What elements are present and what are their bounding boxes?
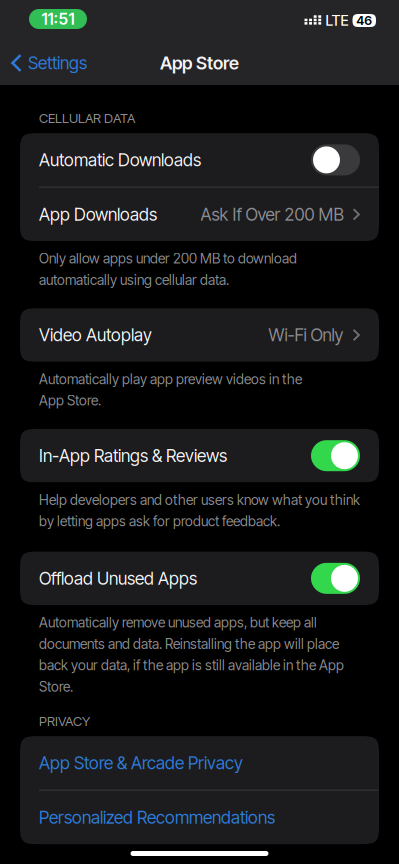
staticText: CELLULAR DATA (39, 110, 135, 126)
staticText: Offload Unused Apps (39, 568, 197, 589)
staticText: Only allow apps under 200 MB to download… (39, 250, 297, 288)
button[interactable]: Video Autoplay (20, 308, 379, 362)
staticText: App Downloads (39, 204, 157, 225)
staticText: Automatic Downloads (39, 149, 201, 170)
button[interactable]: Personalized Recommendations (20, 791, 379, 844)
button[interactable]: App Store & Arcade Privacy (20, 736, 379, 790)
staticText: 11:51 (41, 9, 74, 29)
staticText: LTE (325, 12, 348, 29)
staticText: Personalized Recommendations (39, 807, 275, 828)
staticText: Help developers and other users know wha… (39, 491, 360, 530)
staticText: PRIVACY (39, 713, 90, 729)
button[interactable]: Settings (0, 45, 87, 80)
button[interactable]: Offload Unused Apps (20, 552, 379, 605)
staticText: In-App Ratings & Reviews (39, 445, 227, 466)
staticText: 46 (356, 13, 372, 28)
staticText: Video Autoplay (39, 325, 152, 346)
button[interactable]: App Downloads (20, 188, 379, 241)
staticText: App Store & Arcade Privacy (39, 752, 243, 773)
staticText: Ask If Over 200 MB (200, 204, 343, 225)
button[interactable]: Automatic Downloads (20, 133, 379, 187)
staticText: Automatically remove unused apps, but ke… (39, 614, 344, 695)
staticText: Wi-Fi Only (268, 325, 343, 346)
button[interactable]: In-App Ratings & Reviews (20, 429, 379, 482)
staticText: App Store (160, 52, 239, 74)
staticText: Automatically play app preview videos in… (39, 371, 302, 409)
staticText: Settings (28, 52, 87, 73)
